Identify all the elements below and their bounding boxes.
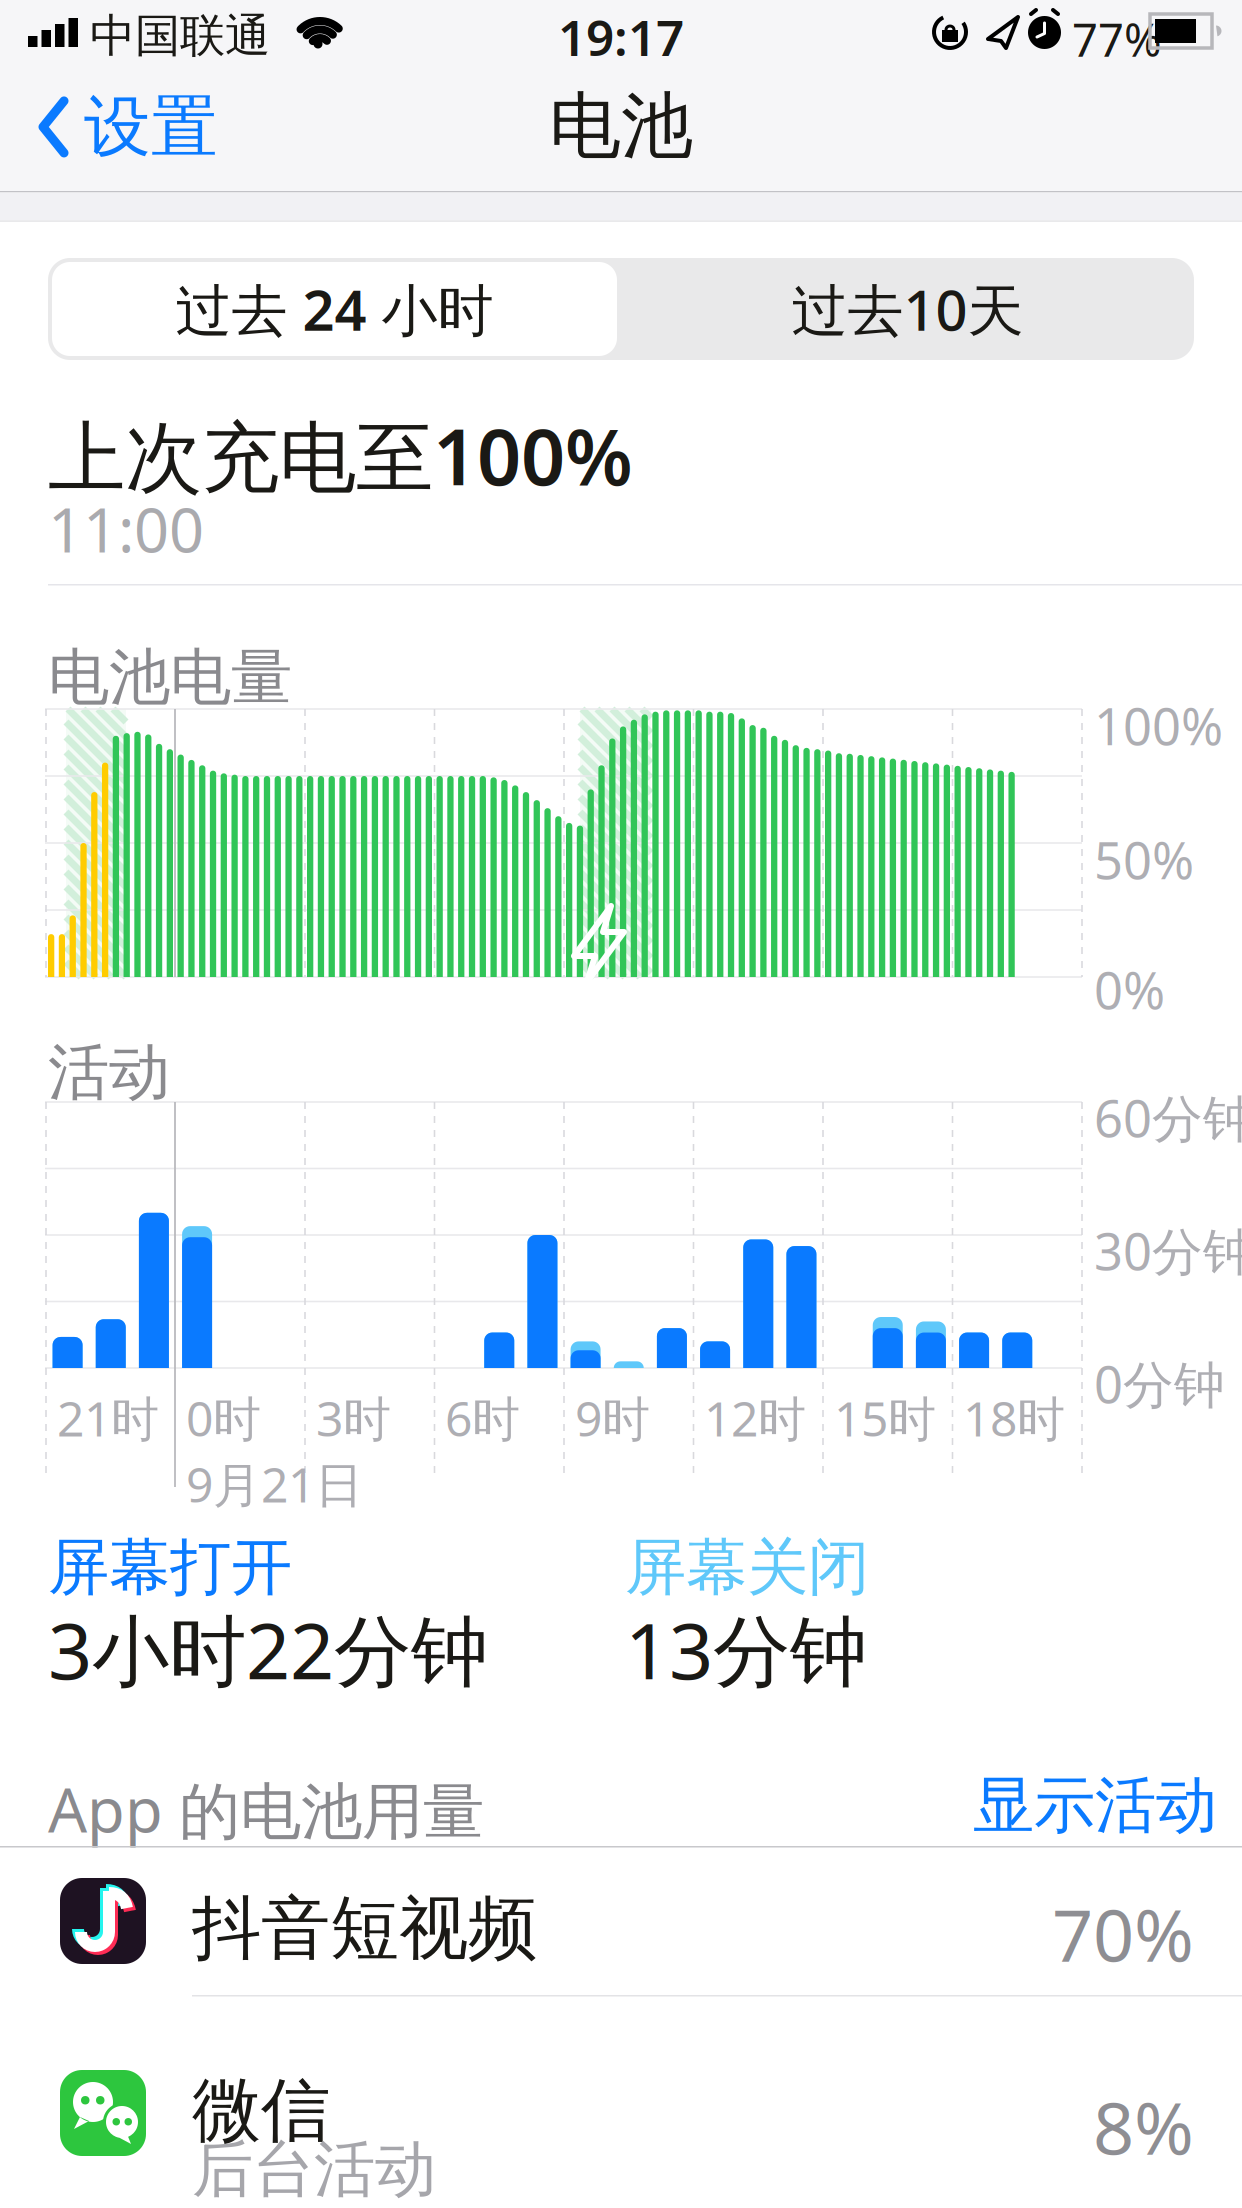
- button[interactable]: 显示活动: [973, 1768, 1217, 1843]
- staticText: 0时: [186, 1386, 261, 1450]
- staticText: 微信: [192, 2068, 330, 2153]
- staticText: 显示活动: [973, 1768, 1217, 1843]
- staticText: 后台活动: [192, 2132, 436, 2207]
- staticText: 抖音短视频: [192, 1886, 537, 1971]
- staticText: 77%: [1072, 9, 1162, 69]
- staticText: App 的电池用量: [48, 1768, 484, 1850]
- staticText: 30分钟: [1094, 1217, 1242, 1284]
- staticText: 中国联通: [90, 8, 270, 64]
- staticText: 100%: [1094, 692, 1223, 759]
- staticText: 60分钟: [1094, 1084, 1242, 1151]
- staticText: 屏幕打开: [48, 1530, 292, 1605]
- staticText: 12时: [704, 1386, 806, 1450]
- button[interactable]: 过去10天: [625, 262, 1190, 356]
- staticText: 18时: [963, 1386, 1065, 1450]
- staticText: 6时: [445, 1386, 520, 1450]
- staticText: 过去 24 小时: [175, 272, 493, 346]
- staticText: 设置: [84, 86, 218, 168]
- button[interactable]: 过去 24 小时: [52, 262, 617, 356]
- staticText: 8%: [1093, 2079, 1194, 2175]
- button[interactable]: 微信: [0, 1997, 1242, 2208]
- staticText: 11:00: [48, 488, 204, 569]
- staticText: 3小时22分钟: [48, 1598, 488, 1701]
- staticText: 21时: [57, 1386, 159, 1450]
- staticText: 活动: [48, 1035, 170, 1110]
- staticText: 电池电量: [48, 640, 292, 715]
- staticText: 13分钟: [625, 1598, 867, 1701]
- staticText: 9时: [575, 1386, 650, 1450]
- button[interactable]: 设置: [38, 86, 218, 168]
- staticText: 3时: [316, 1386, 391, 1450]
- staticText: 70%: [1052, 1886, 1194, 1982]
- staticText: 0分钟: [1094, 1350, 1225, 1417]
- staticText: 15时: [834, 1386, 936, 1450]
- staticText: 电池: [549, 82, 693, 170]
- staticText: 屏幕关闭: [625, 1530, 869, 1605]
- staticText: 19:17: [558, 4, 684, 69]
- button[interactable]: 抖音短视频: [0, 1848, 1242, 1996]
- staticText: 0%: [1094, 956, 1165, 1023]
- staticText: 50%: [1094, 826, 1194, 893]
- staticText: 过去10天: [791, 272, 1023, 346]
- staticText: 上次充电至100%: [48, 404, 633, 507]
- staticText: 9月21日: [186, 1452, 363, 1516]
